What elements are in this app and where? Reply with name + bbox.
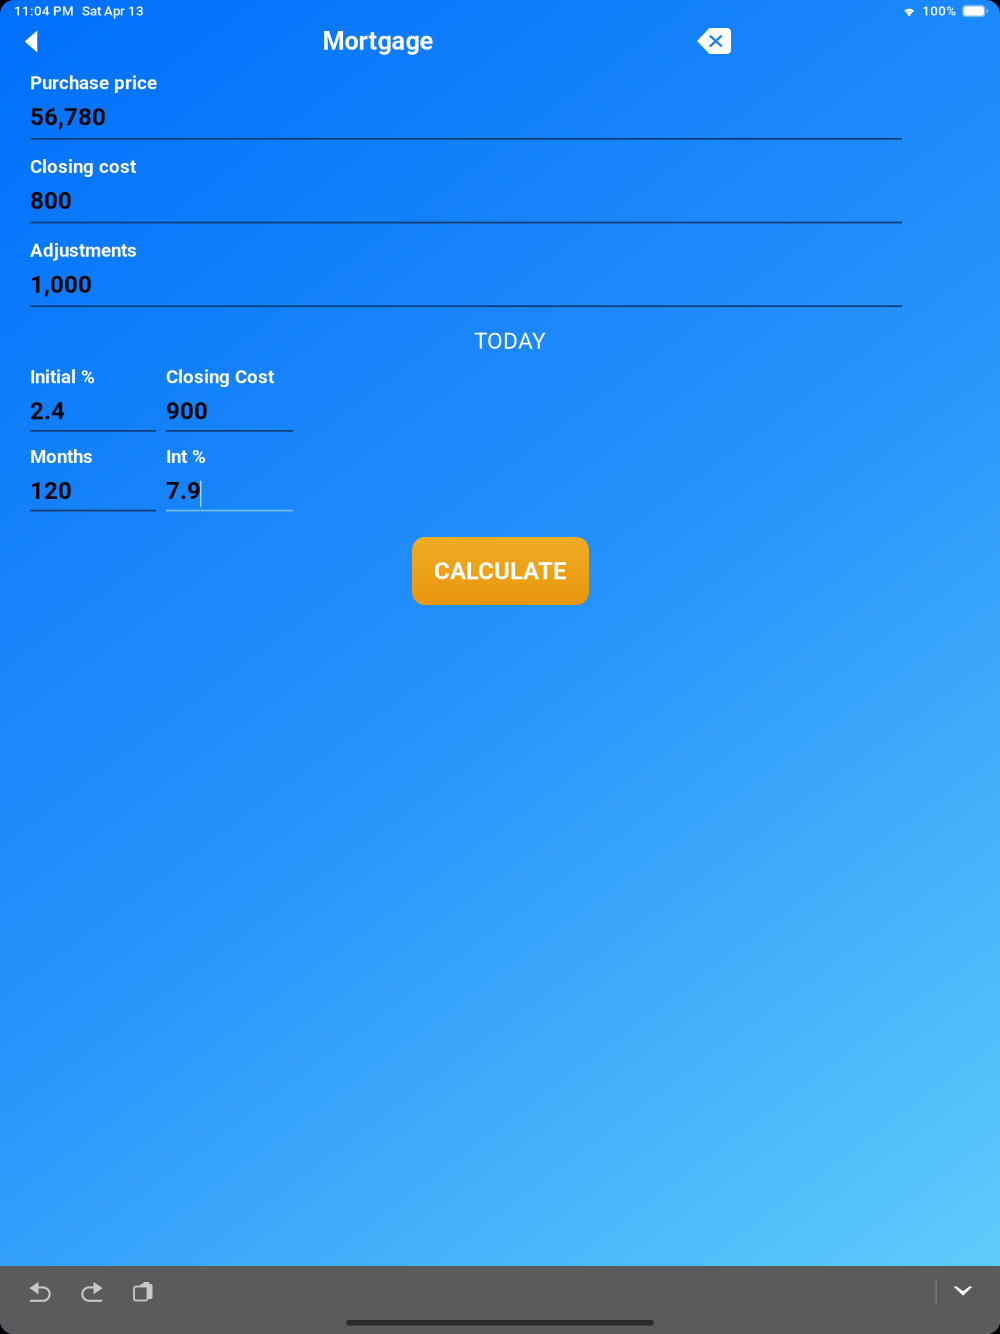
staticText: Mortgage <box>322 26 433 56</box>
staticText: TODAY <box>474 328 546 354</box>
button[interactable]: Hide keyboard <box>937 1266 989 1318</box>
button[interactable]: Paste <box>118 1266 170 1318</box>
staticText: 120 <box>30 477 72 505</box>
staticText: 11:04 PM <box>14 3 74 19</box>
staticText: Initial % <box>30 366 95 388</box>
button[interactable]: Undo <box>14 1266 66 1318</box>
staticText: 7.9 <box>166 477 201 505</box>
button[interactable]: Clear <box>697 28 741 66</box>
staticText: Closing cost <box>30 156 136 178</box>
staticText: Purchase price <box>30 72 157 94</box>
staticText: 900 <box>166 397 208 425</box>
staticText: 1,000 <box>30 270 92 298</box>
staticText: 100% <box>922 3 956 19</box>
staticText: 800 <box>30 187 72 215</box>
staticText: Sat Apr 13 <box>82 3 144 19</box>
staticText: CALCULATE <box>434 557 567 585</box>
staticText: Int % <box>166 446 206 468</box>
staticText: Adjustments <box>30 239 137 261</box>
button[interactable]: CALCULATE <box>412 537 589 605</box>
staticText: Closing Cost <box>166 366 274 388</box>
staticText: Months <box>30 446 93 468</box>
button[interactable]: Back <box>8 19 54 63</box>
staticText: 56,780 <box>30 103 106 131</box>
staticText: 2.4 <box>30 397 65 425</box>
button[interactable]: Redo <box>66 1266 118 1318</box>
